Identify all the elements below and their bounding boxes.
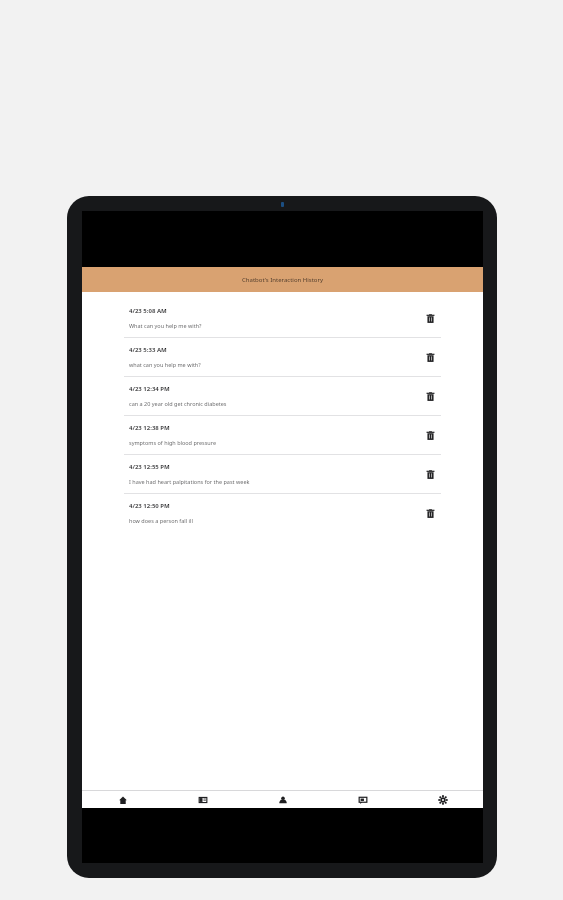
button[interactable]: Delete history entry: [423, 467, 437, 481]
staticText: 4/23 12:34 PM: [129, 385, 170, 393]
button[interactable]: Delete history entry: [423, 350, 437, 364]
staticText: I have had heart palpitations for the pa…: [129, 478, 250, 485]
staticText: 4/23 5:08 AM: [129, 307, 167, 315]
button[interactable]: Profile: [243, 791, 323, 808]
button[interactable]: 4/23 12:34 PM: [124, 377, 441, 415]
staticText: symptoms of high blood pressure: [129, 439, 217, 446]
staticText: 4/23 12:50 PM: [129, 502, 170, 510]
button[interactable]: 4/23 5:08 AM: [124, 299, 441, 337]
button[interactable]: Home: [82, 791, 163, 808]
button[interactable]: 4/23 12:38 PM: [124, 416, 441, 454]
button[interactable]: 4/23 12:55 PM: [124, 455, 441, 493]
button[interactable]: Chat: [323, 791, 403, 808]
staticText: how does a person fall ill: [129, 517, 193, 524]
button[interactable]: Delete history entry: [423, 389, 437, 403]
staticText: What can you help me with?: [129, 322, 202, 329]
staticText: can a 20 year old get chronic diabetes: [129, 400, 227, 407]
button[interactable]: Delete history entry: [423, 428, 437, 442]
button[interactable]: Settings: [403, 791, 483, 808]
button[interactable]: Delete history entry: [423, 311, 437, 325]
staticText: 4/23 12:55 PM: [129, 463, 170, 471]
staticText: 4/23 12:38 PM: [129, 424, 170, 432]
staticText: what can you help me with?: [129, 361, 201, 368]
button[interactable]: Delete history entry: [423, 506, 437, 520]
staticText: 4/23 5:33 AM: [129, 346, 167, 354]
button[interactable]: 4/23 5:33 AM: [124, 338, 441, 376]
staticText: Chatbot's Interaction History: [242, 276, 323, 284]
button[interactable]: 4/23 12:50 PM: [124, 494, 441, 532]
button[interactable]: Library: [163, 791, 243, 808]
